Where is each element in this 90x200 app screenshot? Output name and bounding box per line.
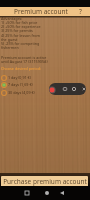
button[interactable]: Help [76,7,85,16]
staticText: until August 17 (3115905#) [1,59,48,64]
button[interactable]: 1 day (0,91 €) [0,74,90,81]
button[interactable]: 7 days (1,69 €) [0,81,90,88]
staticText: the guest [1,37,18,42]
staticText: Premium account is active [1,55,47,60]
staticText: 5) -25% for competing [1,41,40,46]
staticText: 3) 25% for permits [1,28,33,33]
staticText: Premium account [14,7,68,16]
button[interactable]: Purchase premium account [1,176,88,187]
button[interactable]: Record [49,85,56,94]
staticText: ? [79,7,82,16]
staticText: Purchase premium account [3,177,87,186]
staticText: Advantages: [1,16,23,21]
button[interactable]: Back [56,186,67,200]
staticText: 4) 25% for lesson from [1,33,40,38]
button[interactable]: Close [80,83,86,95]
staticText: 2) +50% for experience [1,24,41,29]
staticText: 1 day (0,91 €) [8,75,31,80]
staticText: fishermen [1,45,19,50]
staticText: Choose desired period: [1,66,42,71]
staticText: 30 days (4,09 €) [8,90,35,95]
button[interactable]: Recents [21,186,32,200]
staticText: 1) +50% for fish price [1,20,38,25]
button[interactable]: 30 days (4,09 €) [0,89,90,96]
staticText: 7 days (1,69 €) [8,82,33,87]
button[interactable]: Settings [70,83,78,95]
button[interactable]: Screenshot [61,83,69,95]
button[interactable]: Home [41,186,52,200]
